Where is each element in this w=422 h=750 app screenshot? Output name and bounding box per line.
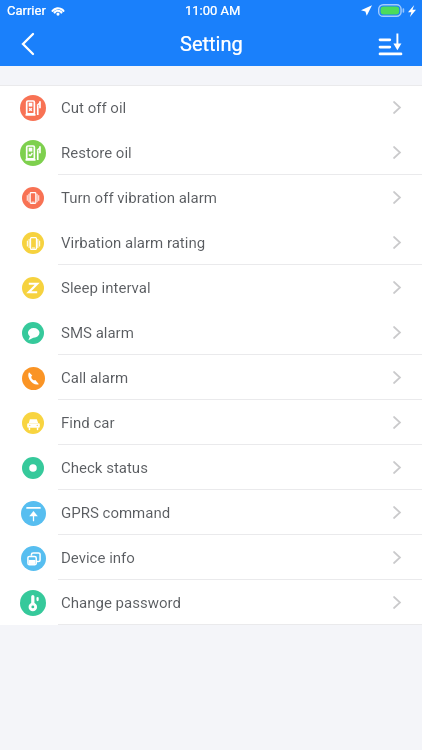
staticText: Virbation alarm rating <box>61 234 206 252</box>
button[interactable]: GPRS command <box>0 490 422 535</box>
staticText: Device info <box>61 549 135 567</box>
staticText: Sleep interval <box>61 279 151 297</box>
button[interactable]: Find car <box>0 400 422 445</box>
staticText: Setting <box>180 32 243 55</box>
button[interactable]: Back <box>0 21 56 66</box>
staticText: Check status <box>61 459 148 477</box>
button[interactable]: Restore oil <box>0 130 422 175</box>
button[interactable]: Virbation alarm rating <box>0 220 422 265</box>
staticText: Turn off vibration alarm <box>61 189 217 207</box>
button[interactable]: Check status <box>0 445 422 490</box>
staticText: SMS alarm <box>61 324 134 342</box>
button[interactable]: Turn off vibration alarm <box>0 175 422 220</box>
button[interactable]: Cut off oil <box>0 85 422 130</box>
staticText: Find car <box>61 414 115 432</box>
staticText: Restore oil <box>61 144 132 162</box>
button[interactable]: Sleep interval <box>0 265 422 310</box>
button[interactable]: Sort <box>358 21 422 66</box>
staticText: GPRS command <box>61 504 171 522</box>
button[interactable]: Change password <box>0 580 422 625</box>
staticText: Carrier <box>7 3 46 18</box>
button[interactable]: Call alarm <box>0 355 422 400</box>
button[interactable]: Device info <box>0 535 422 580</box>
staticText: 11:00 AM <box>185 3 241 18</box>
button[interactable]: SMS alarm <box>0 310 422 355</box>
staticText: Cut off oil <box>61 99 127 117</box>
staticText: Change password <box>61 594 181 612</box>
staticText: Call alarm <box>61 369 129 387</box>
